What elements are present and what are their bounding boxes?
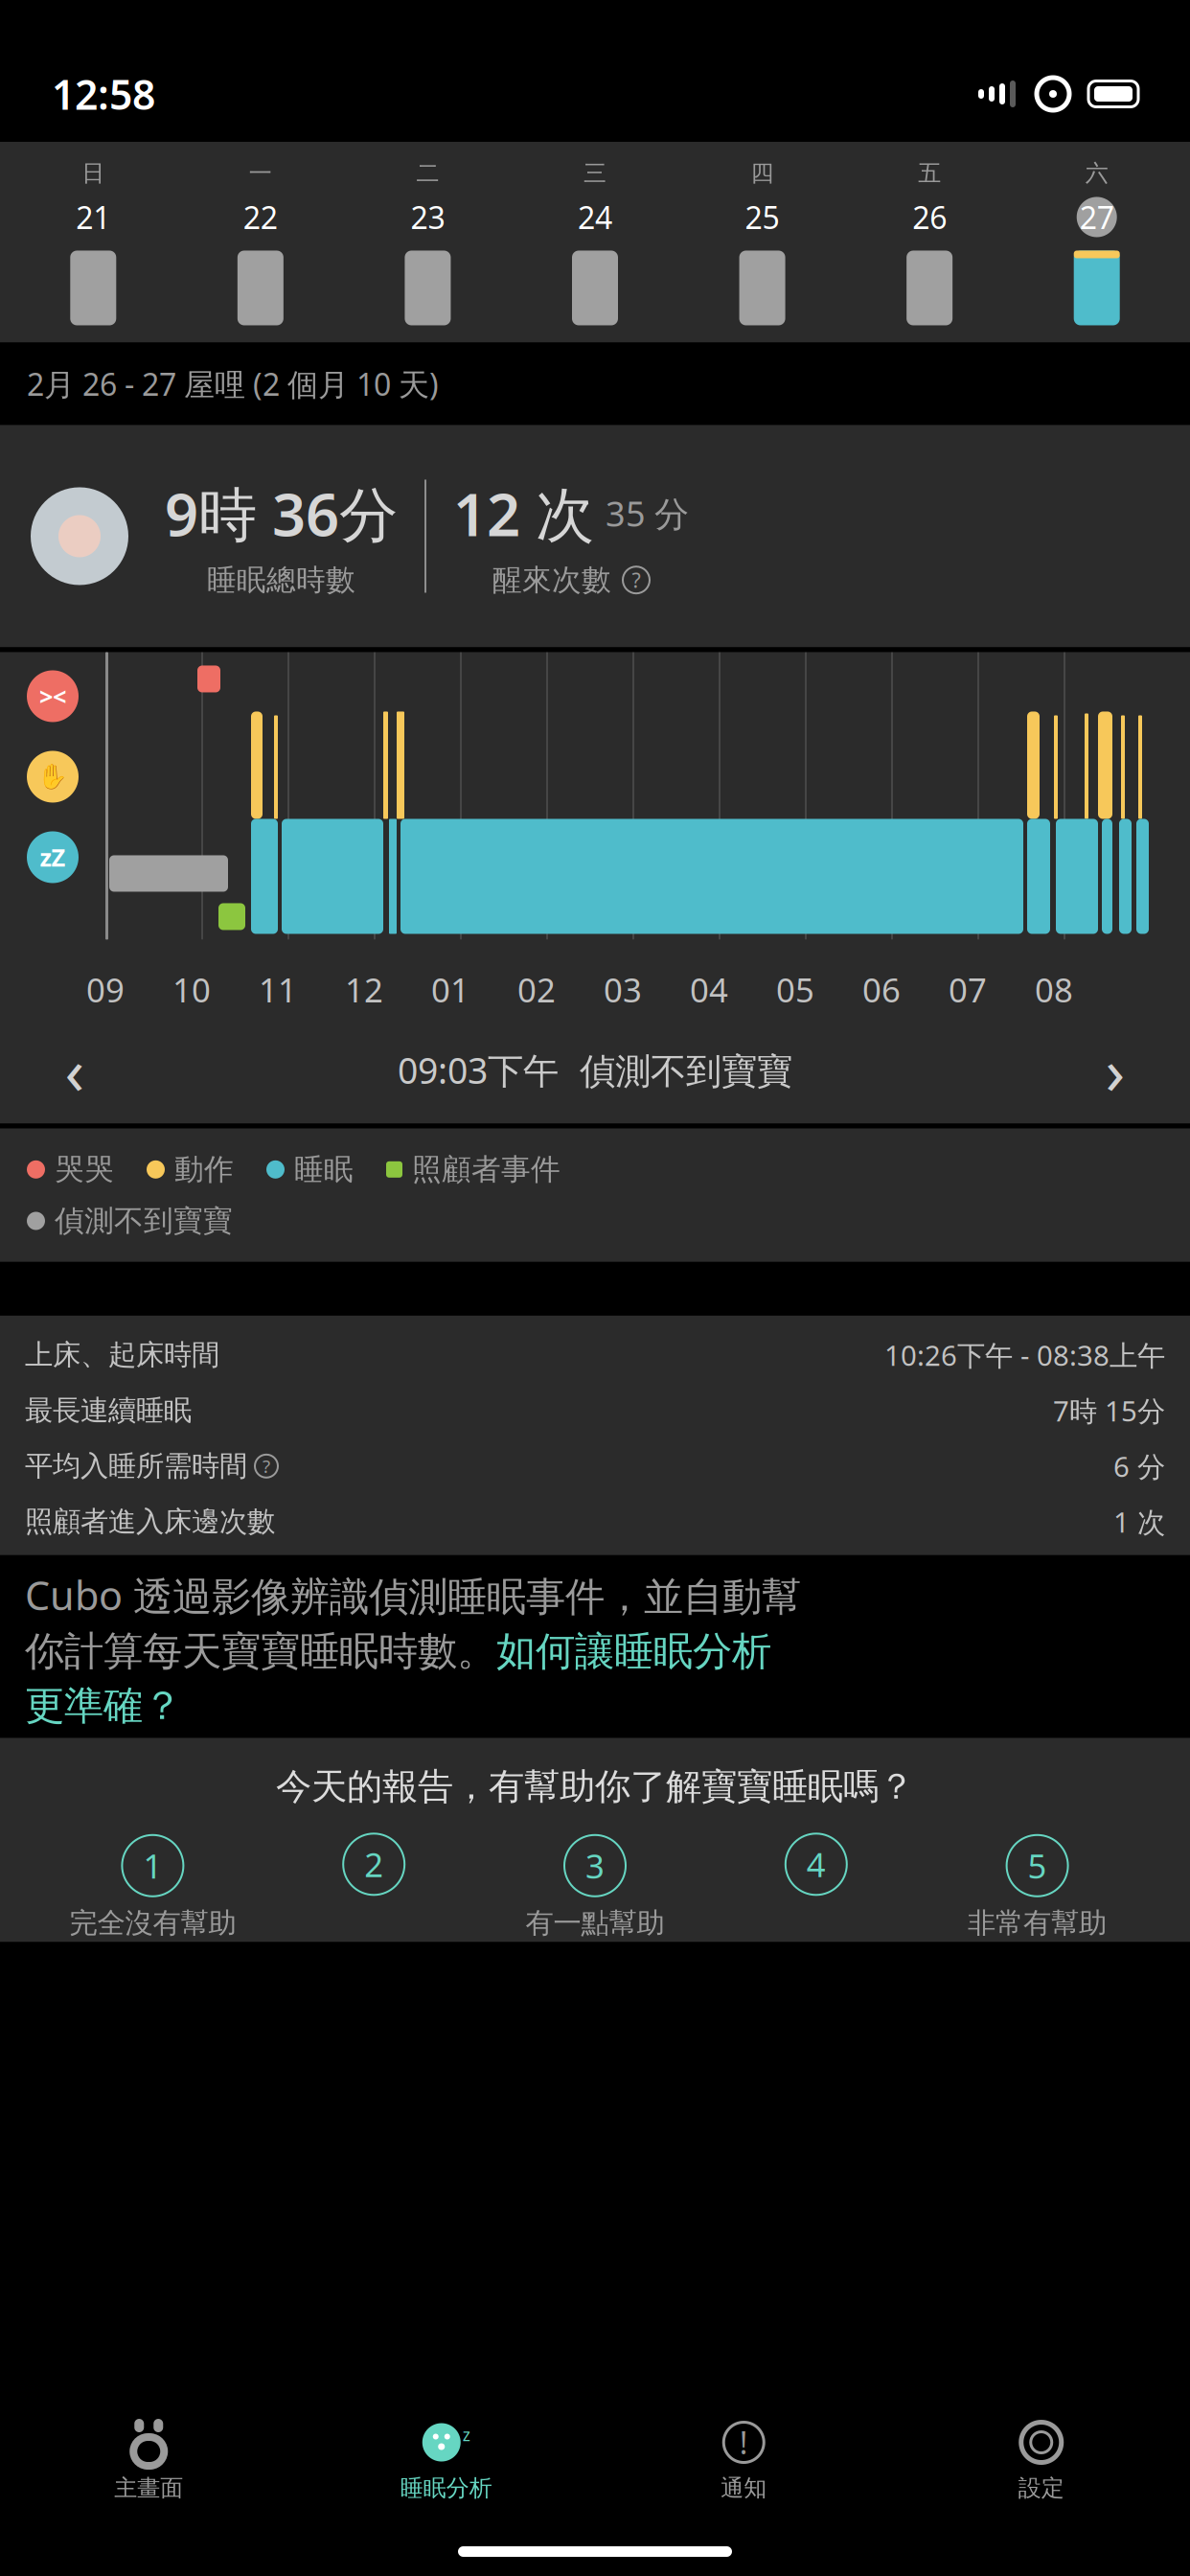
staticText: 10:26下午 - 08:38上午 (884, 1336, 1165, 1374)
staticText: 你計算每天寶寶睡眠時數。 (25, 1627, 496, 1676)
button[interactable]: 1 (42, 1835, 263, 1940)
staticText: 平均入睡所需時間 (25, 1449, 247, 1483)
staticText: 睡眠總時數 (207, 562, 355, 598)
staticText: 07 (949, 967, 987, 1012)
staticText: 9時 36分 (165, 474, 398, 552)
staticText: 睡眠分析 (400, 2474, 492, 2502)
staticText: 23 (410, 197, 445, 237)
staticText: 12 次 (453, 474, 594, 552)
staticText: 動作 (174, 1151, 234, 1188)
staticText: 7時 15分 (1053, 1392, 1165, 1429)
button[interactable]: 一 (177, 159, 344, 325)
staticText: 更準確？ (25, 1682, 182, 1730)
staticText: 完全沒有幫助 (69, 1906, 236, 1940)
staticText: 照顧者進入床邊次數 (25, 1504, 275, 1539)
staticText: 非常有幫助 (968, 1906, 1107, 1940)
staticText: 05 (776, 967, 814, 1012)
staticText: 二 (416, 159, 439, 187)
staticText: 五 (918, 159, 941, 187)
staticText: >< (39, 680, 66, 712)
button[interactable]: 如何讓睡眠分析 (496, 1627, 771, 1676)
staticText: 睡眠 (294, 1151, 354, 1188)
button[interactable]: 二 (344, 159, 511, 325)
button[interactable]: 主畫面 (0, 2420, 297, 2502)
staticText: Cubo 透過影像辨識偵測睡眠事件，並自動幫 (25, 1569, 801, 1621)
staticText: 醒來次數 (492, 562, 611, 598)
staticText: 03 (604, 967, 642, 1012)
button[interactable]: 更準確？ (25, 1682, 182, 1730)
staticText: 1 (143, 1844, 162, 1888)
staticText: 照顧者事件 (412, 1151, 561, 1188)
staticText: 四 (751, 159, 774, 187)
staticText: 35 分 (606, 490, 689, 536)
button[interactable]: 三 (511, 159, 679, 325)
button[interactable]: 六 (1013, 159, 1180, 325)
staticText: 日 (82, 159, 105, 187)
staticText: ✋ (37, 763, 68, 791)
staticText: 最長連續睡眠 (25, 1393, 192, 1428)
staticText: 3 (585, 1844, 605, 1888)
staticText: 04 (690, 967, 728, 1012)
staticText: 02 (517, 967, 556, 1012)
staticText: 有一點幫助 (526, 1906, 664, 1940)
button[interactable]: 日 (10, 159, 177, 325)
staticText: › (1105, 1028, 1125, 1112)
staticText: 09 (86, 967, 125, 1012)
button[interactable]: 四 (679, 159, 846, 325)
staticText: 10 (172, 967, 211, 1012)
staticText: 1 次 (1113, 1503, 1165, 1540)
staticText: 08 (1035, 967, 1073, 1012)
staticText: 09:03下午 偵測不到寶寶 (398, 1046, 792, 1094)
staticText: 11 (259, 967, 297, 1012)
staticText: 12 (345, 967, 383, 1012)
staticText: ? (632, 566, 641, 593)
staticText: 主畫面 (114, 2474, 183, 2502)
staticText: 上床、起床時間 (25, 1338, 219, 1372)
staticText: 如何讓睡眠分析 (496, 1627, 771, 1676)
staticText: 24 (578, 197, 612, 237)
button[interactable]: 下一個事件 (1058, 1026, 1173, 1114)
button[interactable]: 五 (846, 159, 1013, 325)
staticText: 25 (745, 197, 780, 237)
staticText: 2 (364, 1842, 383, 1886)
staticText: 22 (243, 197, 278, 237)
staticText: ‹ (65, 1028, 85, 1112)
staticText: z (463, 2424, 470, 2446)
staticText: 5 (1028, 1844, 1047, 1888)
staticText: 6 分 (1113, 1447, 1165, 1485)
button[interactable]: ! (595, 2420, 892, 2502)
staticText: 哭哭 (55, 1151, 114, 1188)
staticText: 一 (249, 159, 272, 187)
staticText: 設定 (1018, 2474, 1064, 2502)
button[interactable]: 5 (927, 1835, 1148, 1940)
button[interactable]: 設定 (892, 2420, 1190, 2502)
staticText: 4 (807, 1842, 826, 1886)
staticText: 六 (1085, 159, 1108, 187)
staticText: 06 (862, 967, 901, 1012)
staticText: 2月 26 - 27 屋哩 (2 個月 10 天) (27, 363, 439, 404)
staticText: 三 (584, 159, 606, 187)
staticText: 27 (1080, 197, 1114, 237)
button[interactable]: 4 (706, 1834, 927, 1942)
staticText: 通知 (721, 2474, 767, 2502)
button[interactable]: 3 (484, 1835, 706, 1940)
staticText: 12:58 (52, 67, 155, 121)
staticText: 今天的報告，有幫助你了解寶寶睡眠嗎？ (276, 1765, 914, 1809)
staticText: 26 (912, 197, 947, 237)
staticText: 偵測不到寶寶 (55, 1203, 233, 1239)
button[interactable]: z (297, 2420, 595, 2502)
button[interactable]: 上一個事件 (17, 1026, 132, 1114)
staticText: zZ (40, 841, 66, 873)
staticText: 01 (431, 967, 469, 1012)
button[interactable]: 2 (263, 1834, 484, 1942)
staticText: 21 (76, 197, 110, 237)
staticText: ! (739, 2422, 748, 2463)
staticText: ? (263, 1454, 270, 1478)
